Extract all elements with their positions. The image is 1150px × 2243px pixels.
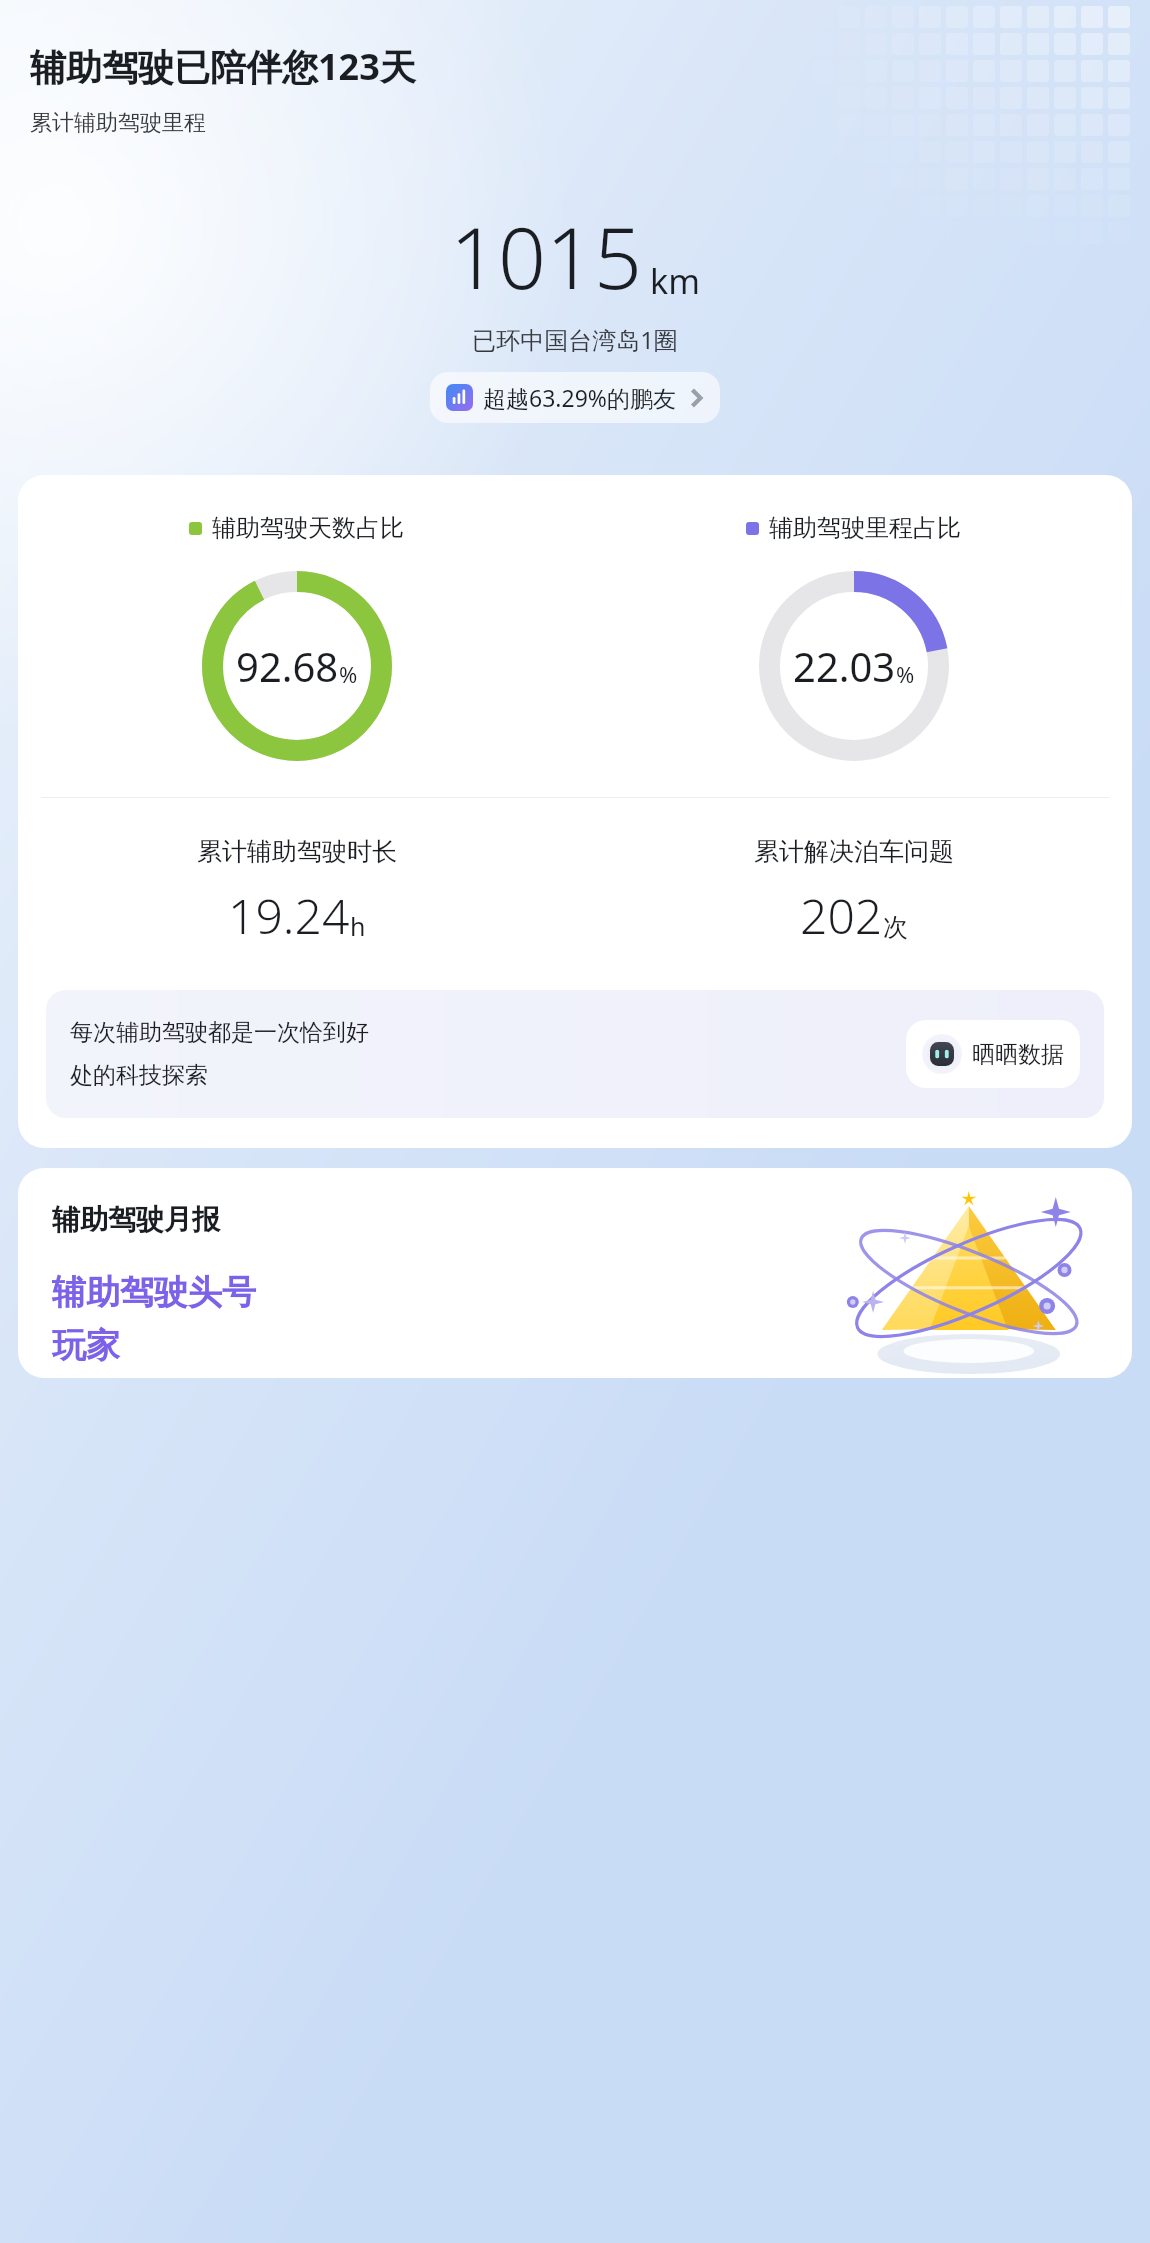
button[interactable]: 辅助驾驶月报 <box>18 1168 1132 1378</box>
staticText: % <box>896 659 915 689</box>
button[interactable]: 晒晒数据 <box>906 1020 1080 1088</box>
staticText: 玩家 <box>52 1324 120 1367</box>
staticText: 累计辅助驾驶里程 <box>30 109 206 137</box>
staticText: 超越63.29%的鹏友 <box>483 382 676 413</box>
staticText: 92.68 <box>236 639 339 693</box>
staticText: 晒晒数据 <box>972 1040 1064 1069</box>
staticText: 次 <box>883 912 908 943</box>
staticText: 22.03 <box>793 639 896 693</box>
staticText: 累计解决泊车问题 <box>754 836 954 867</box>
staticText: 累计辅助驾驶时长 <box>197 836 397 867</box>
staticText: 202 <box>800 883 883 948</box>
staticText: 辅助驾驶头号 <box>52 1271 256 1314</box>
staticText: 辅助驾驶里程占比 <box>769 513 961 543</box>
staticText: h <box>350 909 366 943</box>
staticText: 辅助驾驶已陪伴您123天 <box>30 42 416 91</box>
staticText: 辅助驾驶月报 <box>52 1202 220 1237</box>
staticText: 1015 <box>450 199 642 313</box>
button[interactable]: 超越63.29%的鹏友 <box>430 372 720 423</box>
staticText: 19.24 <box>228 883 350 948</box>
staticText: 已环中国台湾岛1圈 <box>0 323 1150 356</box>
staticText: 每次辅助驾驶都是一次恰到好 <box>70 1018 369 1047</box>
staticText: 辅助驾驶天数占比 <box>212 513 404 543</box>
staticText: 处的科技探索 <box>70 1061 208 1090</box>
staticText: km <box>650 258 700 304</box>
staticText: % <box>339 659 358 689</box>
